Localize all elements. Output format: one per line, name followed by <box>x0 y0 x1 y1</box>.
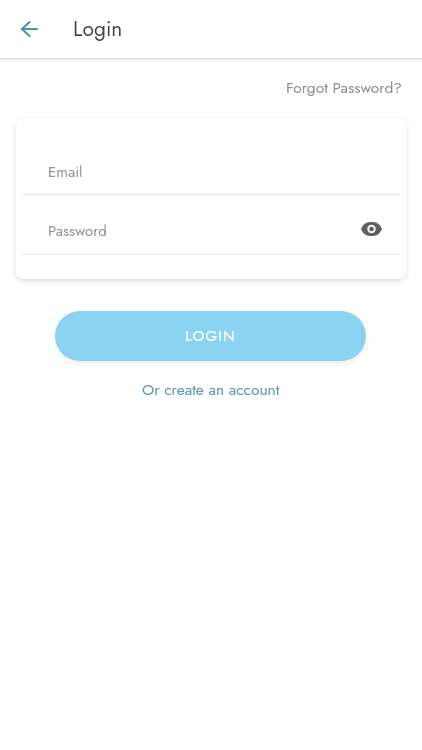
staticText: Forgot Password? <box>286 76 402 98</box>
staticText: Password <box>48 220 107 242</box>
button[interactable]: Or create an account <box>142 378 280 400</box>
button[interactable]: Show password <box>355 213 387 245</box>
staticText: Email <box>48 161 83 183</box>
staticText: Login <box>73 14 123 44</box>
button[interactable]: LOGIN <box>55 311 366 361</box>
button[interactable]: Forgot Password? <box>286 76 402 98</box>
button[interactable]: Back <box>11 11 47 47</box>
staticText: LOGIN <box>185 325 236 347</box>
